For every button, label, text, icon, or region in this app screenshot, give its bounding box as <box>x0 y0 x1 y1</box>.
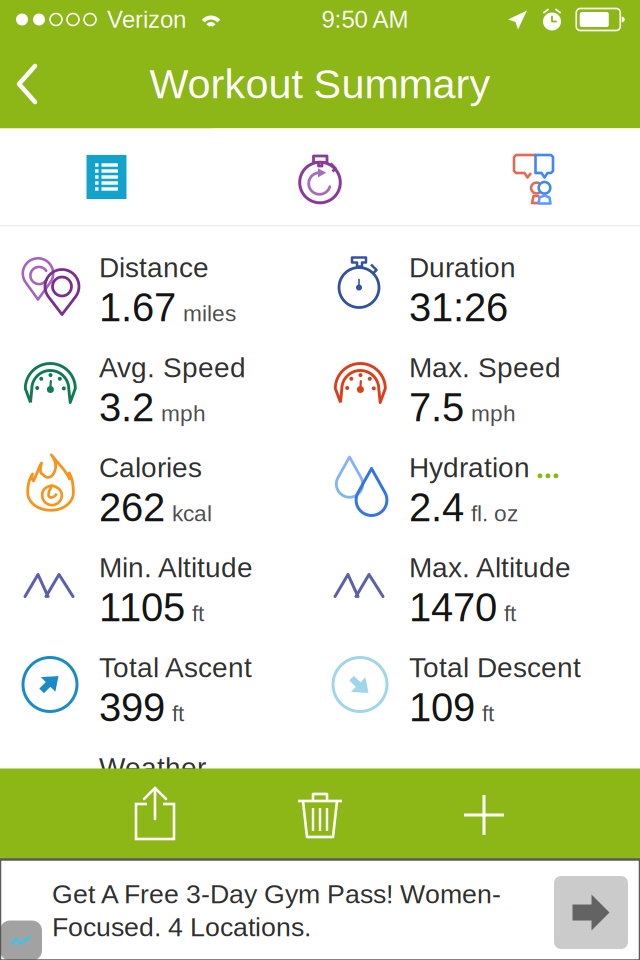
staticText: Max. Speed <box>409 352 561 383</box>
staticText: 3.2 <box>99 385 154 430</box>
staticText: Duration <box>409 252 516 283</box>
staticText: Distance <box>99 252 209 283</box>
staticText: 7.5 <box>409 385 464 430</box>
staticText: Workout Summary <box>149 61 490 107</box>
staticText: miles <box>183 301 236 326</box>
staticText: Min. Altitude <box>99 552 253 583</box>
staticText: ft <box>192 601 204 626</box>
staticText: Total Ascent <box>99 652 252 683</box>
button[interactable]: Summary <box>0 128 213 225</box>
staticText: 399 <box>99 685 165 730</box>
staticText: ... <box>536 448 560 486</box>
staticText: Max. Altitude <box>409 552 571 583</box>
button[interactable]: Back <box>0 50 64 118</box>
staticText: 1.67 <box>99 285 176 330</box>
staticText: Focused. 4 Locations. <box>52 912 311 942</box>
staticText: fl. oz <box>471 501 518 526</box>
button[interactable]: Splits <box>213 128 427 225</box>
staticText: Weather <box>99 752 206 783</box>
staticText: 1105 <box>99 585 185 630</box>
staticText: ft <box>482 701 494 726</box>
staticText: ft <box>172 701 184 726</box>
button[interactable]: Delete <box>265 768 375 859</box>
button[interactable]: Social <box>427 128 640 225</box>
button[interactable]: Add <box>429 768 539 859</box>
staticText: mph <box>161 401 206 426</box>
staticText: Calories <box>99 452 202 483</box>
button[interactable]: Share <box>100 768 210 859</box>
staticText: 1470 <box>409 585 497 630</box>
staticText: 262 <box>99 485 165 530</box>
button[interactable]: Get A Free 3-Day Gym Pass! Women- <box>0 859 640 960</box>
staticText: 109 <box>409 685 475 730</box>
staticText: Verizon <box>107 6 186 33</box>
staticText: Get A Free 3-Day Gym Pass! Women- <box>52 879 501 909</box>
staticText: mph <box>471 401 516 426</box>
staticText: Hydration <box>409 452 530 483</box>
staticText: 31:26 <box>409 285 508 330</box>
staticText: 9:50 AM <box>321 6 408 33</box>
staticText: ft <box>504 601 516 626</box>
staticText: 2.4 <box>409 485 464 530</box>
staticText: Total Descent <box>409 652 581 683</box>
staticText: kcal <box>172 501 212 526</box>
staticText: Avg. Speed <box>99 352 246 383</box>
